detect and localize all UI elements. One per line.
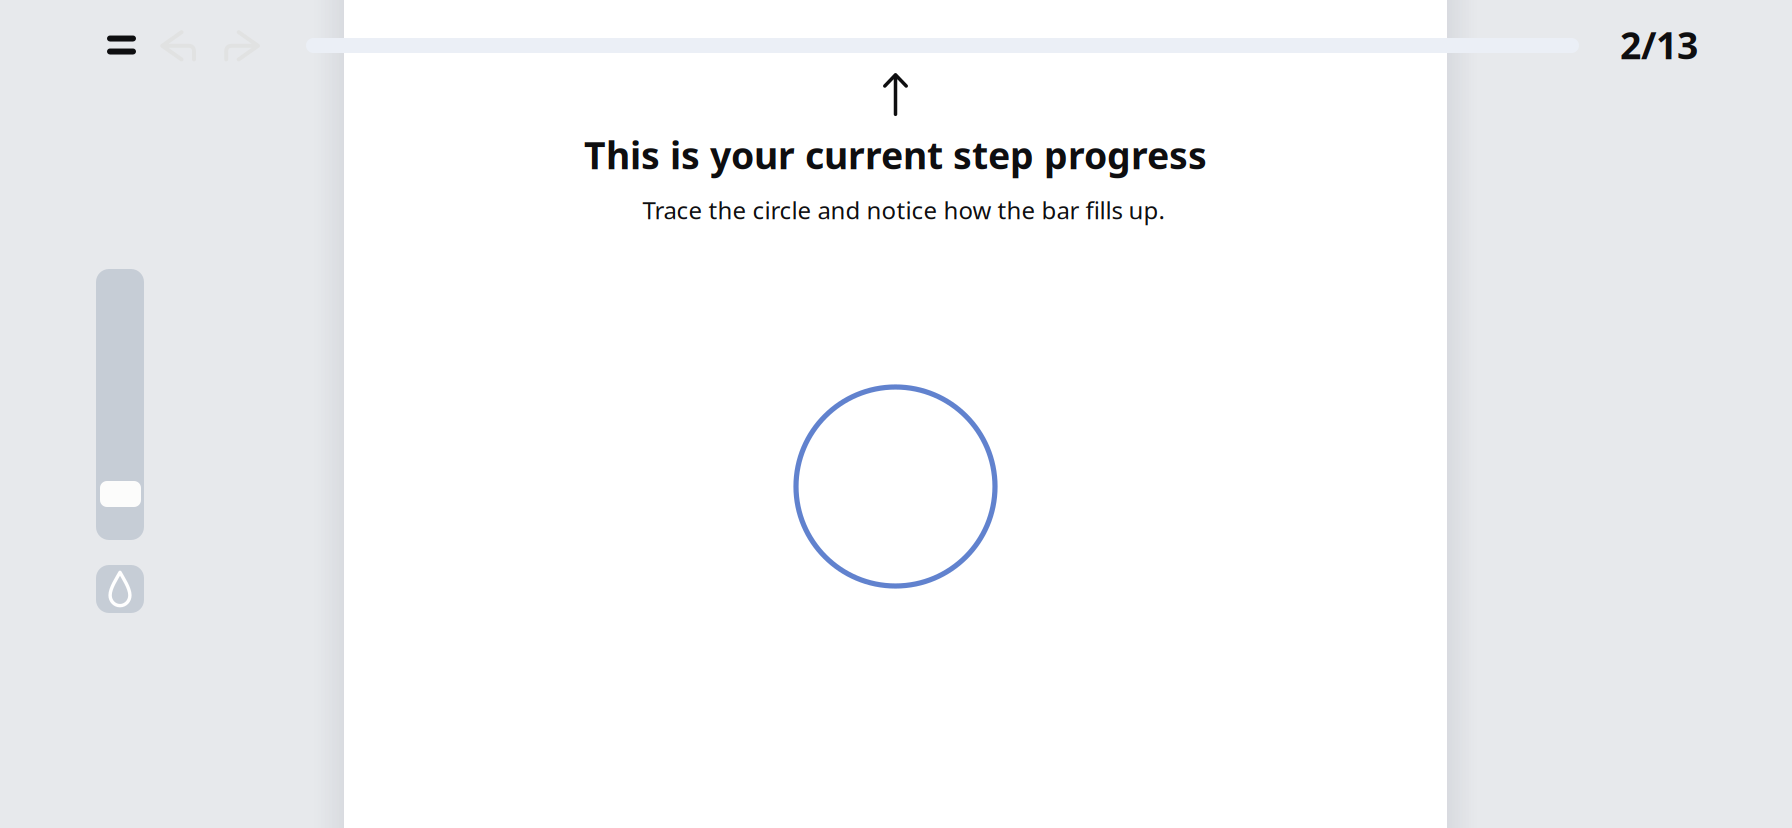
staticText: 2/13	[1620, 20, 1698, 70]
staticText: This is your current step progress	[584, 130, 1207, 180]
button[interactable]: Undo	[160, 30, 196, 62]
button[interactable]: Redo	[224, 30, 260, 62]
button[interactable]: Brush size	[96, 269, 144, 540]
button[interactable]: Menu	[101, 26, 142, 64]
staticText: Trace the circle and notice how the bar …	[642, 194, 1164, 226]
button[interactable]: Opacity	[96, 565, 144, 613]
